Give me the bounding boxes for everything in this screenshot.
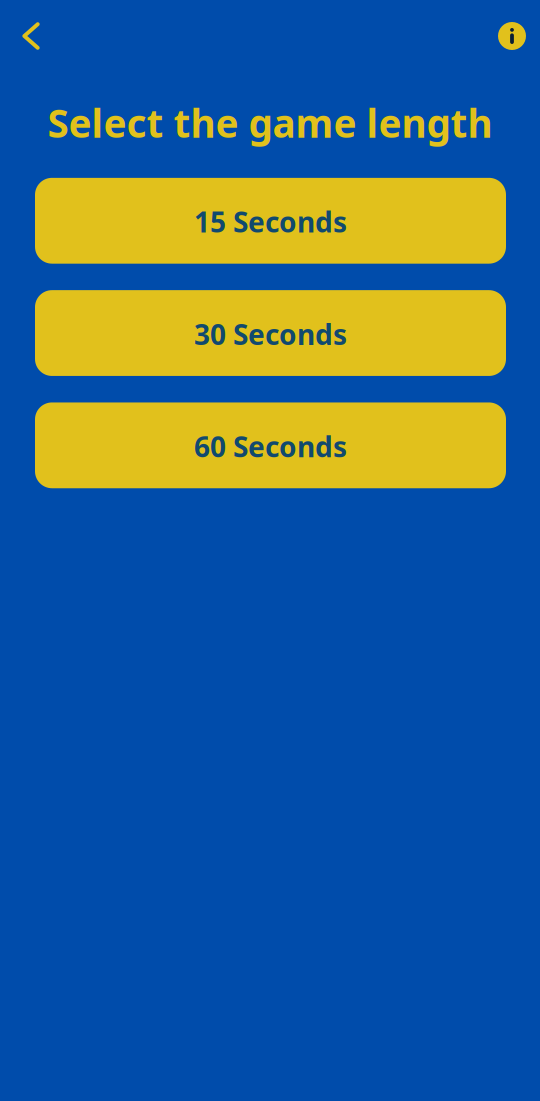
button[interactable]: Back [9, 14, 53, 58]
button[interactable]: Information [490, 14, 534, 58]
staticText: 15 Seconds [194, 203, 347, 240]
staticText: Select the game length [47, 97, 492, 148]
button[interactable]: 30 Seconds [35, 290, 506, 376]
button[interactable]: 15 Seconds [35, 178, 506, 264]
staticText: 60 Seconds [194, 428, 347, 465]
staticText: 30 Seconds [194, 315, 347, 353]
button[interactable]: 60 Seconds [35, 402, 506, 488]
